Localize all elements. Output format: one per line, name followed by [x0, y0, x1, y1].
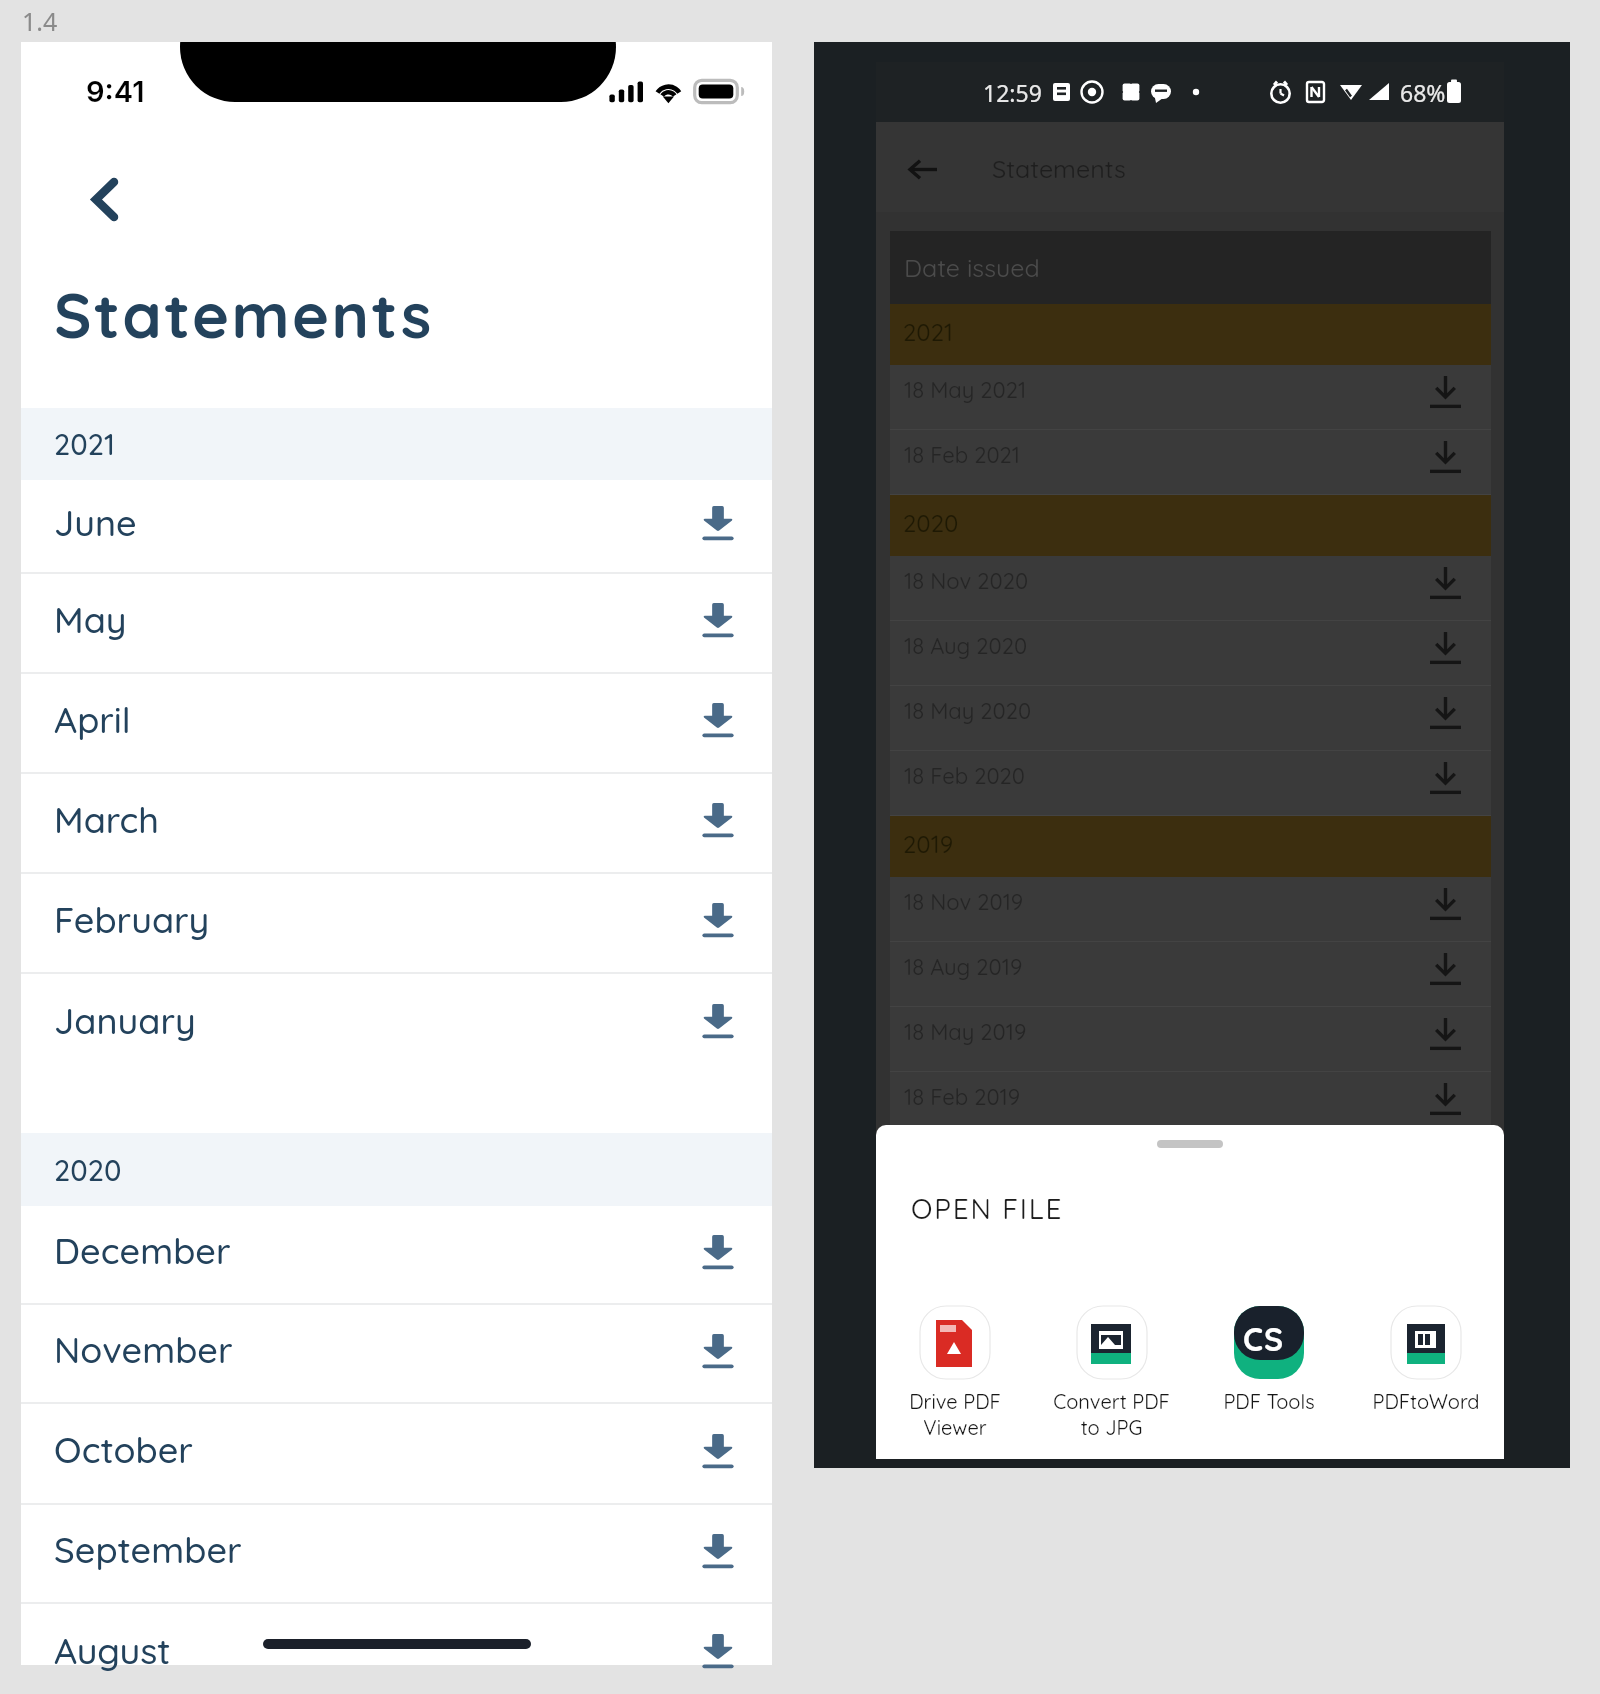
button[interactable]: 18 Feb 2019 — [890, 1072, 1491, 1136]
staticText: 18 Aug 2020 — [904, 632, 1028, 660]
button[interactable]: Back — [59, 153, 151, 245]
staticText: 12:59 — [983, 77, 1042, 108]
button[interactable]: November — [21, 1305, 772, 1402]
button[interactable]: December — [21, 1206, 772, 1303]
button[interactable]: 18 Nov 2020 — [890, 556, 1491, 620]
button[interactable]: 18 May 2019 — [890, 1007, 1491, 1071]
button[interactable]: Back — [882, 122, 972, 212]
button[interactable]: May — [21, 574, 772, 672]
staticText: Date issued — [904, 252, 1040, 283]
staticText: June — [54, 500, 137, 545]
staticText: Statements — [992, 153, 1126, 184]
staticText: CS — [1243, 1319, 1285, 1359]
button[interactable]: 18 Aug 2019 — [890, 942, 1491, 1006]
staticText: 18 Feb 2020 — [904, 762, 1026, 790]
staticText: Statements — [54, 275, 434, 354]
button[interactable]: Convert PDF to JPG — [1033, 1306, 1190, 1440]
button[interactable]: August — [21, 1604, 772, 1694]
button[interactable]: PDFtoWord — [1347, 1306, 1504, 1414]
staticText: 18 May 2020 — [904, 697, 1032, 725]
staticText: 18 Feb 2019 — [904, 1083, 1021, 1111]
button[interactable]: March — [21, 774, 772, 872]
staticText: 2021 — [54, 426, 115, 462]
staticText: May — [54, 597, 127, 642]
staticText: 68% — [1400, 77, 1446, 108]
button[interactable]: Drive PDF Viewer — [876, 1306, 1033, 1440]
staticText: 2020 — [54, 1152, 122, 1188]
button[interactable]: CS — [1190, 1306, 1347, 1414]
staticText: PDFtoWord — [1372, 1389, 1480, 1414]
button[interactable]: April — [21, 674, 772, 772]
button[interactable]: 18 May 2021 — [890, 365, 1491, 429]
staticText: January — [54, 998, 196, 1043]
staticText: 18 May 2019 — [904, 1018, 1027, 1046]
staticText: December — [54, 1228, 231, 1273]
staticText: September — [54, 1527, 242, 1572]
button[interactable]: 18 Feb 2020 — [890, 751, 1491, 815]
staticText: PDF Tools — [1223, 1389, 1315, 1414]
staticText: 9:41 — [86, 74, 145, 109]
staticText: Drive PDF Viewer — [909, 1389, 1001, 1440]
button[interactable]: October — [21, 1404, 772, 1503]
staticText: October — [54, 1427, 193, 1472]
staticText: 18 May 2021 — [904, 376, 1027, 404]
staticText: 2019 — [903, 829, 954, 859]
staticText: 2020 — [903, 508, 959, 538]
staticText: 1.4 — [22, 4, 58, 38]
button[interactable]: 18 Nov 2019 — [890, 877, 1491, 941]
button[interactable]: 18 Aug 2020 — [890, 621, 1491, 685]
button[interactable]: 18 Feb 2021 — [890, 430, 1491, 494]
staticText: August — [54, 1628, 171, 1673]
staticText: OPEN FILE — [911, 1191, 1064, 1226]
staticText: March — [54, 797, 159, 842]
staticText: April — [54, 697, 131, 742]
staticText: 2021 — [903, 317, 954, 347]
staticText: 18 Nov 2020 — [904, 567, 1029, 595]
staticText: February — [54, 897, 210, 942]
staticText: 18 Feb 2021 — [904, 441, 1021, 469]
staticText: 18 Nov 2019 — [904, 888, 1024, 916]
staticText: November — [54, 1327, 233, 1372]
staticText: 18 Aug 2019 — [904, 953, 1023, 981]
button[interactable]: February — [21, 874, 772, 972]
button[interactable]: 18 May 2020 — [890, 686, 1491, 750]
staticText: Convert PDF to JPG — [1053, 1389, 1170, 1440]
button[interactable]: January — [21, 974, 772, 1074]
button[interactable]: September — [21, 1505, 772, 1602]
button[interactable]: June — [21, 480, 772, 572]
